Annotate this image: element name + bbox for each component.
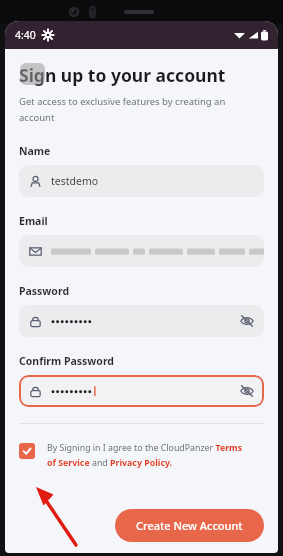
- button[interactable]: [19, 235, 264, 267]
- staticText: Name: [19, 144, 51, 158]
- button[interactable]: testdemo: [19, 165, 264, 197]
- staticText: account: [19, 111, 55, 124]
- staticText: Confirm Password: [19, 354, 115, 368]
- button[interactable]: Toggle password visibility: [239, 383, 255, 399]
- button[interactable]: Create New Account: [115, 509, 264, 542]
- staticText: Sign up to your account: [19, 63, 226, 87]
- staticText: Get access to exclusive features by crea…: [19, 95, 226, 108]
- staticText: Password: [19, 284, 70, 298]
- staticText: Email: [19, 214, 48, 228]
- staticText: 4:40: [15, 28, 36, 42]
- button[interactable]: Toggle password visibility: [239, 313, 255, 329]
- staticText: By Signing in I agree to the CloudPanzer…: [47, 442, 243, 454]
- staticText: of Service and Privacy Policy.: [47, 457, 173, 469]
- button[interactable]: Toggle password visibility: [19, 375, 264, 407]
- staticText: Create New Account: [136, 518, 243, 533]
- staticText: testdemo: [51, 174, 99, 188]
- button[interactable]: Toggle password visibility: [19, 305, 264, 337]
- button[interactable]: Agree to terms: [19, 443, 35, 459]
